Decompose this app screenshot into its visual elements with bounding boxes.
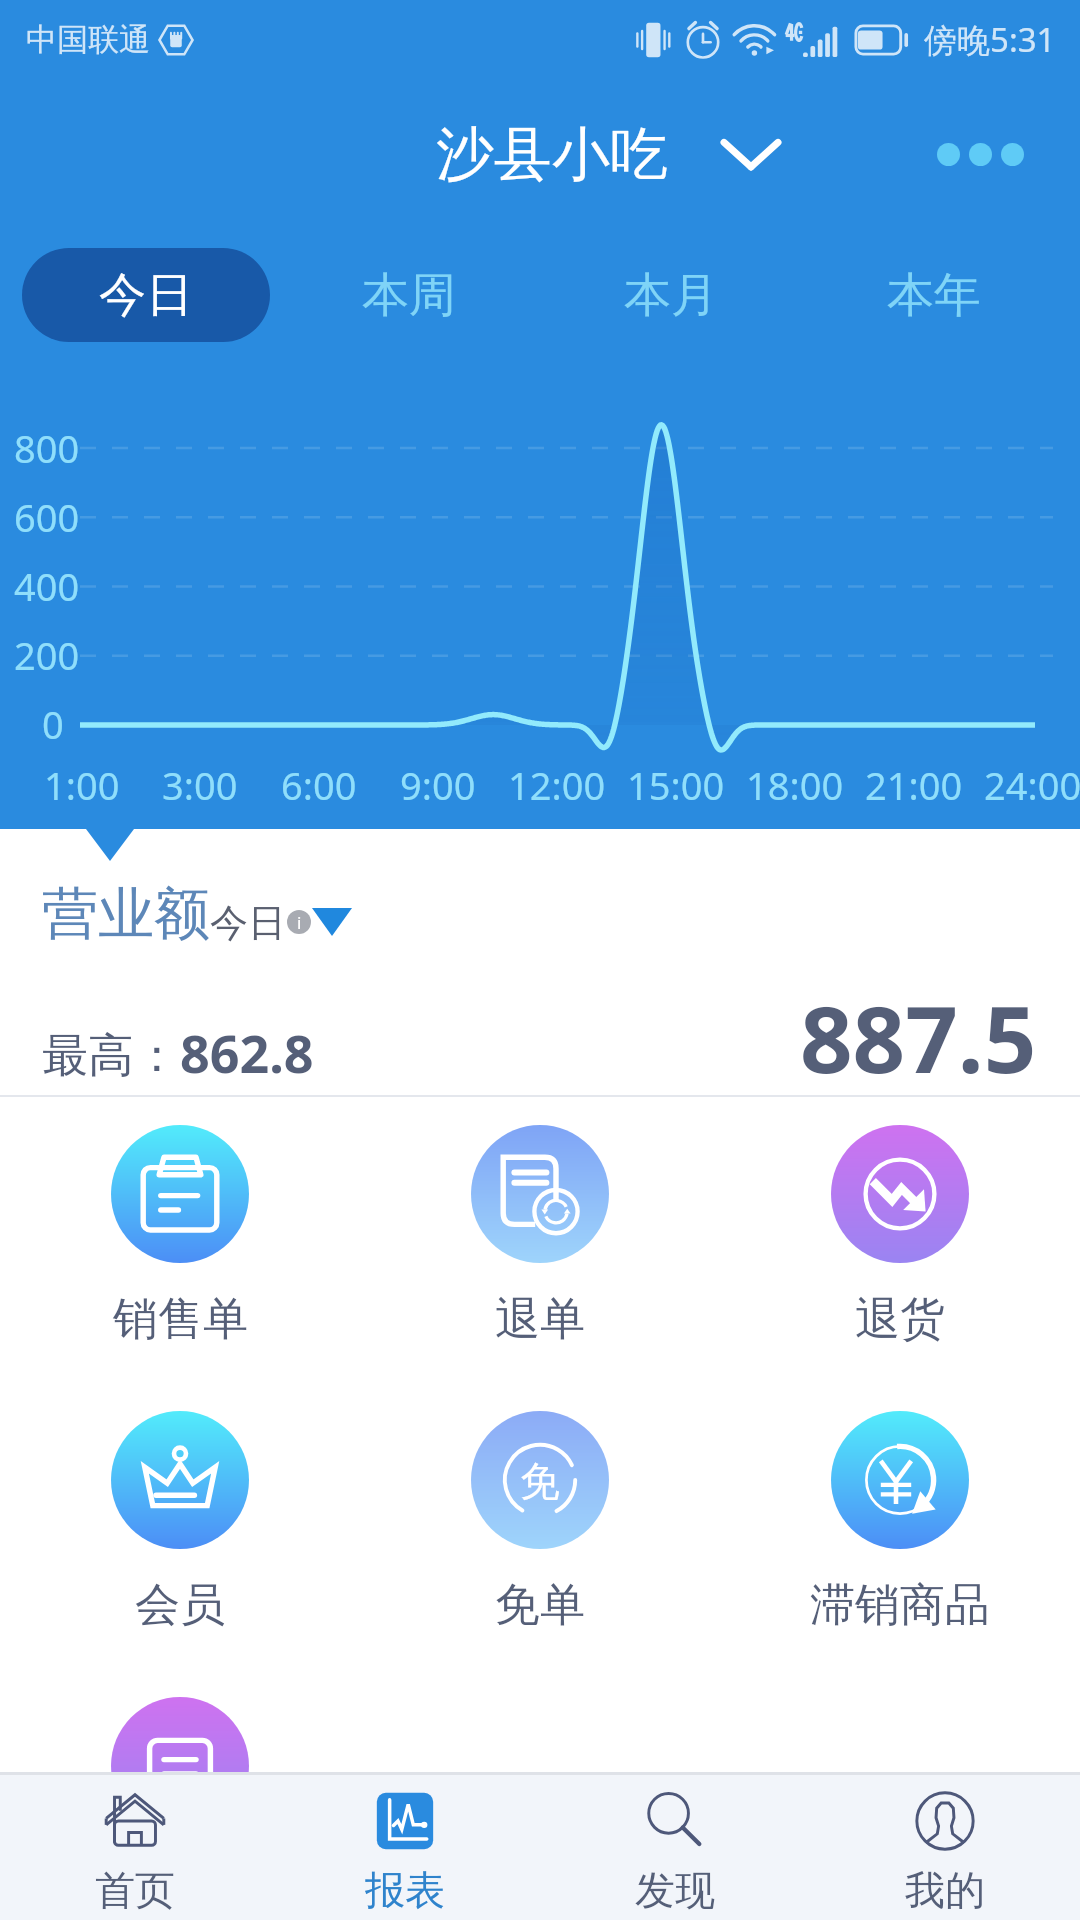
- staticText: 9:00: [400, 759, 476, 811]
- button[interactable]: 今日: [22, 248, 270, 342]
- button[interactable]: 营业额: [42, 879, 352, 950]
- staticText: 862.8: [180, 1017, 314, 1088]
- staticText: 21:00: [865, 759, 963, 811]
- button[interactable]: 销售单: [60, 1125, 300, 1348]
- staticText: 400: [14, 560, 80, 612]
- button[interactable]: 本年: [874, 248, 994, 342]
- staticText: 今日: [210, 899, 286, 947]
- staticText: 今日: [99, 266, 193, 325]
- staticText: 会员: [135, 1577, 225, 1634]
- staticText: 免单: [495, 1577, 585, 1634]
- button[interactable]: 滞销商品: [780, 1411, 1020, 1634]
- staticText: 3:00: [162, 759, 238, 811]
- staticText: 营业额: [42, 879, 210, 950]
- staticText: 中国联通: [26, 20, 150, 59]
- staticText: 首页: [95, 1865, 175, 1915]
- staticText: i: [297, 911, 302, 934]
- button[interactable]: 免: [420, 1411, 660, 1634]
- staticText: 18:00: [746, 759, 844, 811]
- staticText: 800: [14, 422, 80, 474]
- staticText: 本周: [362, 266, 456, 325]
- staticText: 傍晚5:31: [924, 17, 1056, 62]
- button[interactable]: 本月: [611, 248, 731, 342]
- button[interactable]: 发现: [540, 1775, 810, 1920]
- staticText: 本月: [624, 266, 718, 325]
- button[interactable]: 退货: [780, 1125, 1020, 1348]
- button[interactable]: 沙县小吃: [400, 99, 800, 209]
- staticText: 报表: [365, 1865, 445, 1915]
- staticText: 免: [520, 1456, 560, 1506]
- staticText: 我的: [905, 1865, 985, 1915]
- button[interactable]: 更多: [60, 1697, 300, 1920]
- button[interactable]: 报表: [270, 1775, 540, 1920]
- staticText: 销售单: [113, 1291, 248, 1348]
- staticText: 退货: [855, 1291, 945, 1348]
- button[interactable]: More options: [917, 117, 1044, 192]
- staticText: 发现: [635, 1865, 715, 1915]
- staticText: 沙县小吃: [436, 118, 668, 191]
- button[interactable]: 我的: [810, 1775, 1080, 1920]
- staticText: 本年: [887, 266, 981, 325]
- staticText: 600: [14, 491, 80, 543]
- button[interactable]: 本周: [349, 248, 469, 342]
- staticText: 退单: [495, 1291, 585, 1348]
- button[interactable]: 会员: [60, 1411, 300, 1634]
- staticText: 0: [42, 698, 64, 750]
- staticText: 滞销商品: [810, 1577, 990, 1634]
- staticText: 12:00: [508, 759, 606, 811]
- staticText: 更多: [135, 1863, 225, 1920]
- staticText: 24:00: [984, 759, 1080, 811]
- staticText: 200: [14, 629, 80, 681]
- staticText: 6:00: [281, 759, 357, 811]
- staticText: 887.5: [800, 975, 1037, 1100]
- staticText: 15:00: [627, 759, 725, 811]
- button[interactable]: 首页: [0, 1775, 270, 1920]
- button[interactable]: 退单: [420, 1125, 660, 1348]
- staticText: 1:00: [44, 759, 120, 811]
- staticText: 最高：: [42, 1027, 180, 1085]
